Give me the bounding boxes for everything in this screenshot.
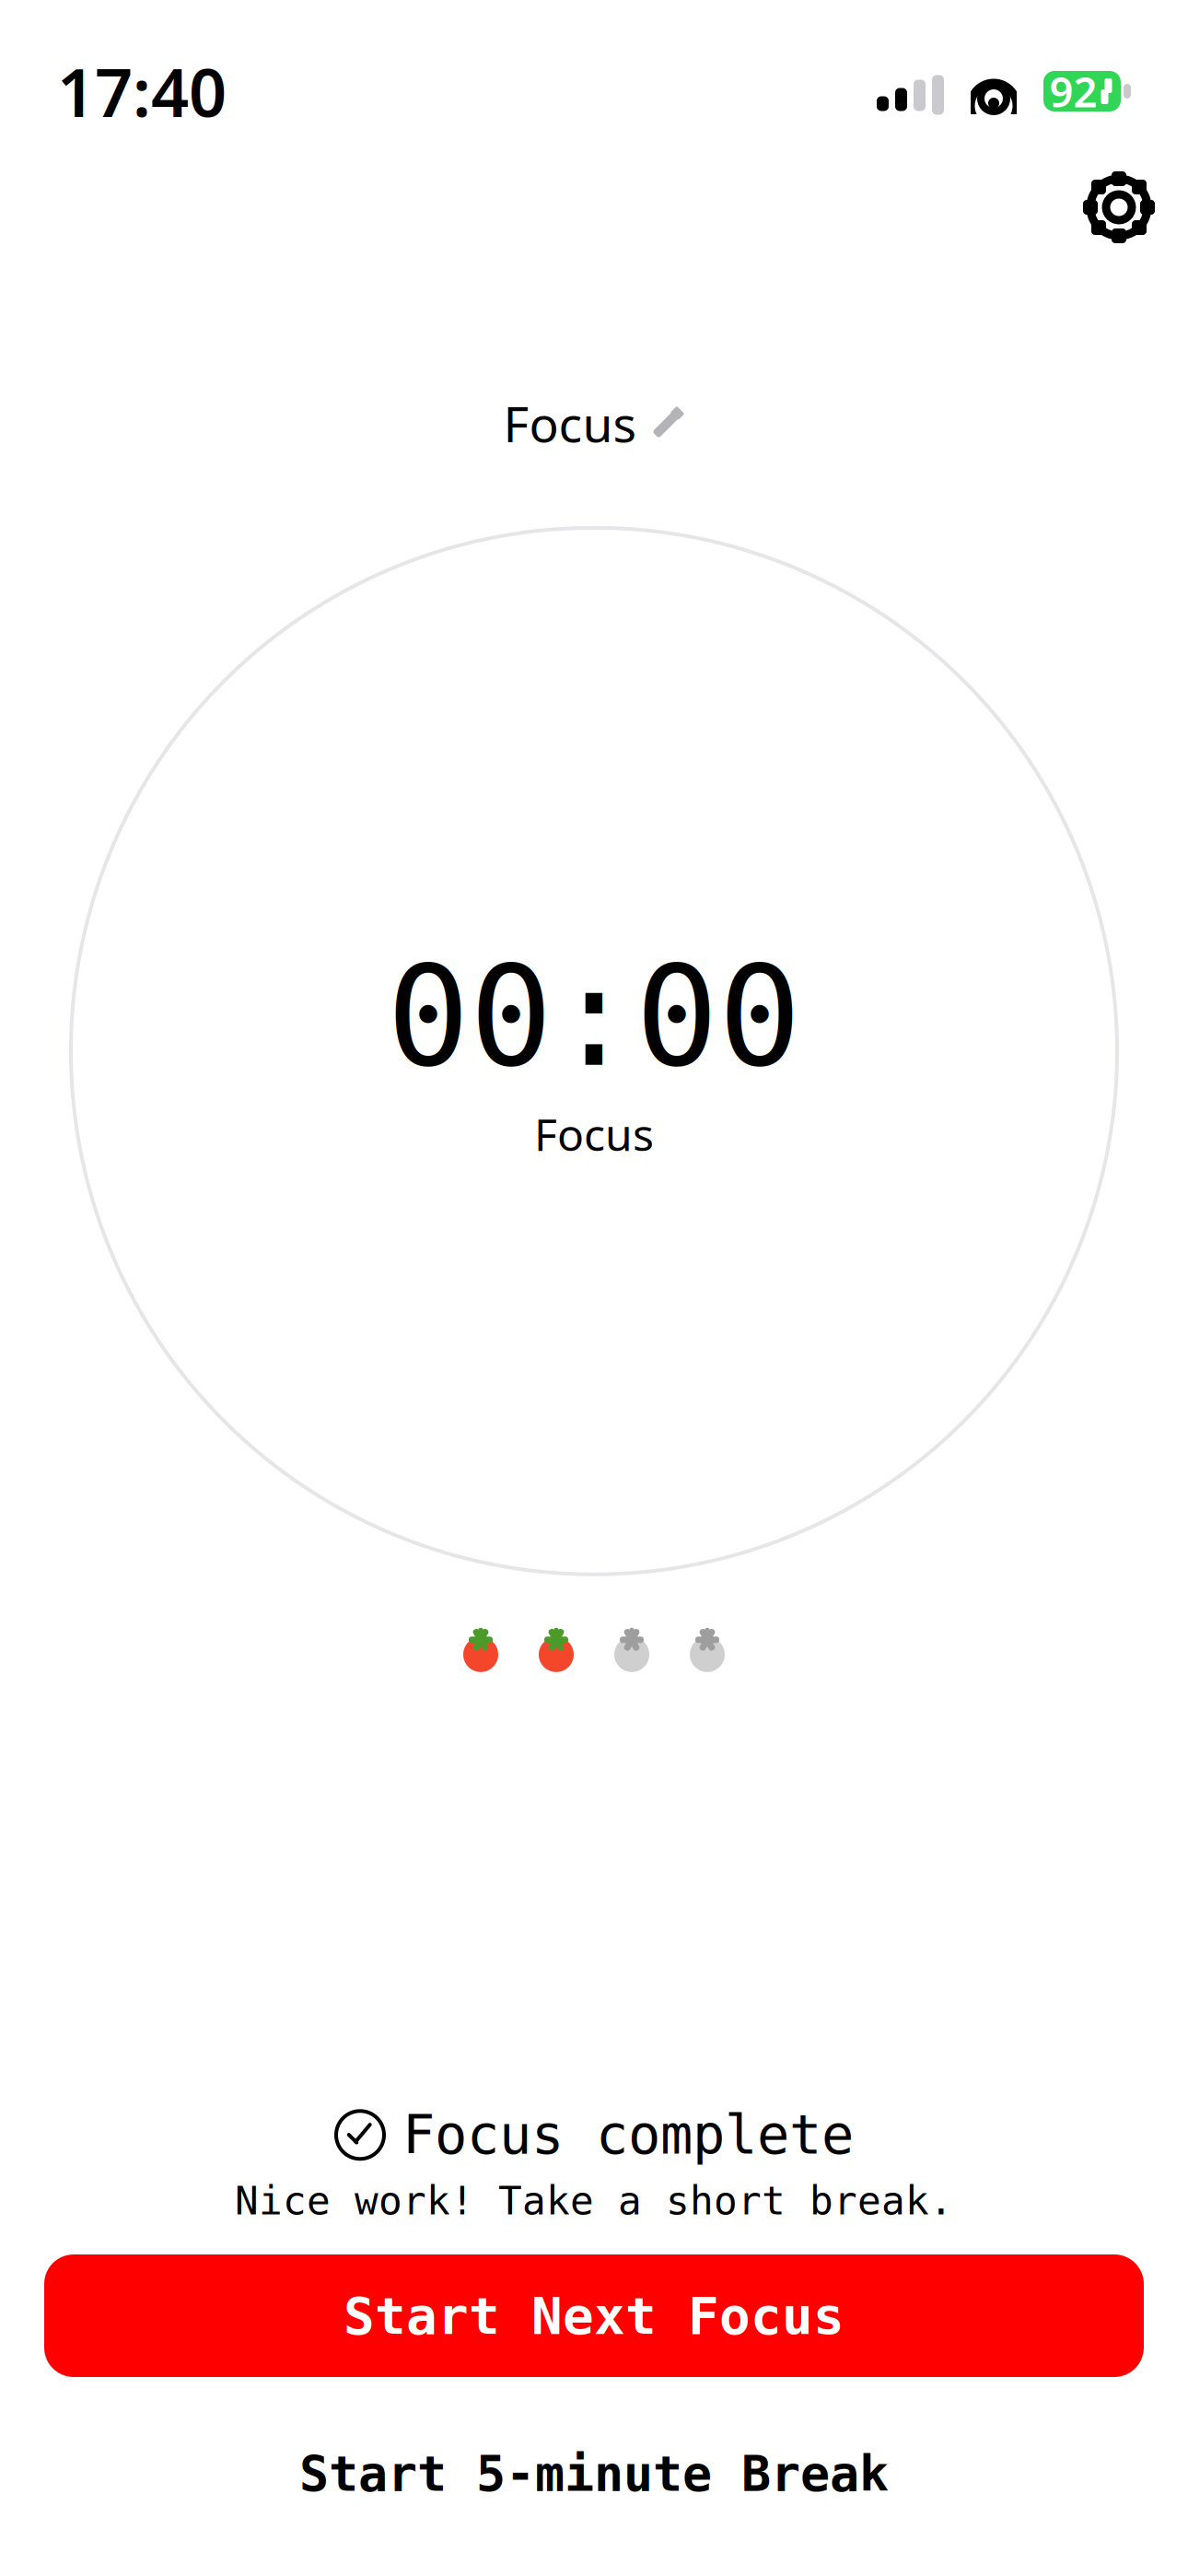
staticText: 17:40: [57, 47, 227, 135]
staticText: 92: [1049, 63, 1097, 119]
staticText: Nice work! Take a short break.: [235, 2179, 953, 2223]
staticText: Focus complete: [402, 2104, 854, 2166]
button[interactable]: Start Next Focus: [44, 2254, 1144, 2377]
staticText: 00:00: [387, 939, 801, 1095]
button[interactable]: Settings: [1079, 168, 1159, 247]
staticText: Start Next Focus: [344, 2286, 844, 2345]
button[interactable]: Start 5-minute Break: [44, 2432, 1144, 2515]
staticText: Focus: [503, 391, 637, 456]
staticText: Start 5-minute Break: [299, 2446, 889, 2502]
button[interactable]: Focus: [494, 385, 694, 461]
staticText: Focus: [534, 1104, 654, 1163]
